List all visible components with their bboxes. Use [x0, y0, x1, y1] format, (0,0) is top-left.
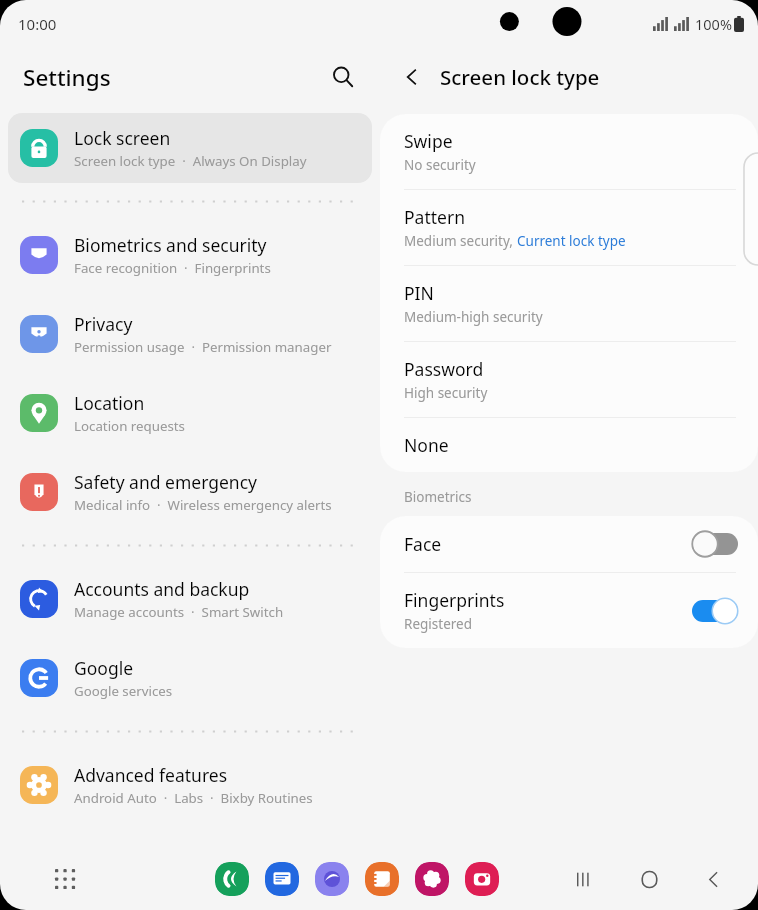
staticText: Location requests: [74, 417, 185, 435]
staticText: Fingerprints: [404, 588, 505, 612]
staticText: Biometrics: [404, 488, 472, 506]
button[interactable]: Privacy: [8, 299, 372, 369]
button[interactable]: Password: [380, 342, 758, 417]
button[interactable]: Internet: [315, 862, 349, 896]
button[interactable]: Gallery: [415, 862, 449, 896]
staticText: Medium security,: [404, 232, 517, 250]
button[interactable]: Pattern: [380, 190, 758, 265]
staticText: Location: [74, 391, 145, 415]
button[interactable]: Location: [8, 378, 372, 448]
button[interactable]: Recents: [566, 860, 604, 898]
staticText: Safety and emergency: [74, 470, 257, 494]
button[interactable]: Back: [694, 860, 732, 898]
staticText: 100%: [695, 14, 732, 34]
staticText: Advanced features: [74, 763, 228, 787]
staticText: PIN: [404, 281, 434, 305]
button[interactable]: Safety and emergency: [8, 457, 372, 527]
staticText: None: [404, 433, 449, 457]
staticText: No security: [404, 156, 476, 174]
button[interactable]: Phone: [215, 862, 249, 896]
button[interactable]: Lock screen: [8, 113, 372, 183]
staticText: Face: [404, 532, 442, 556]
staticText: Accounts and backup: [74, 577, 250, 601]
staticText: 10:00: [18, 14, 57, 34]
button[interactable]: PIN: [380, 266, 758, 341]
staticText: Privacy: [74, 312, 133, 336]
staticText: Manage accounts · Smart Switch: [74, 603, 284, 621]
button[interactable]: Notes: [365, 862, 399, 896]
staticText: Biometrics and security: [74, 233, 267, 257]
staticText: Screen lock type · Always On Display: [74, 152, 307, 170]
button[interactable]: Apps: [48, 862, 82, 896]
button[interactable]: Back: [392, 57, 432, 97]
button[interactable]: None: [380, 418, 758, 472]
staticText: Settings: [23, 62, 111, 93]
staticText: Permission usage · Permission manager: [74, 338, 332, 356]
button[interactable]: Messages: [265, 862, 299, 896]
staticText: Android Auto · Labs · Bixby Routines: [74, 789, 313, 807]
staticText: Registered: [404, 615, 472, 633]
button[interactable]: Swipe: [380, 114, 758, 189]
staticText: Google services: [74, 682, 173, 700]
button[interactable]: Fingerprints: [692, 598, 738, 624]
button[interactable]: Advanced features: [8, 750, 372, 820]
button[interactable]: Accounts and backup: [8, 564, 372, 634]
button[interactable]: Fingerprints: [380, 573, 758, 648]
button[interactable]: Home: [630, 860, 668, 898]
staticText: High security: [404, 384, 488, 402]
staticText: Medical info · Wireless emergency alerts: [74, 496, 332, 514]
button[interactable]: Face: [380, 516, 758, 572]
staticText: Current lock type: [517, 232, 626, 250]
button[interactable]: Biometrics and security: [8, 220, 372, 290]
staticText: Google: [74, 656, 134, 680]
staticText: Screen lock type: [440, 63, 600, 91]
button[interactable]: Face: [692, 531, 738, 557]
staticText: Face recognition · Fingerprints: [74, 259, 271, 277]
button[interactable]: Camera: [465, 862, 499, 896]
staticText: Swipe: [404, 129, 453, 153]
staticText: Medium-high security: [404, 308, 543, 326]
button[interactable]: Search: [322, 56, 364, 98]
staticText: Pattern: [404, 205, 465, 229]
staticText: Password: [404, 357, 484, 381]
button[interactable]: Google: [8, 643, 372, 713]
staticText: Lock screen: [74, 126, 171, 150]
